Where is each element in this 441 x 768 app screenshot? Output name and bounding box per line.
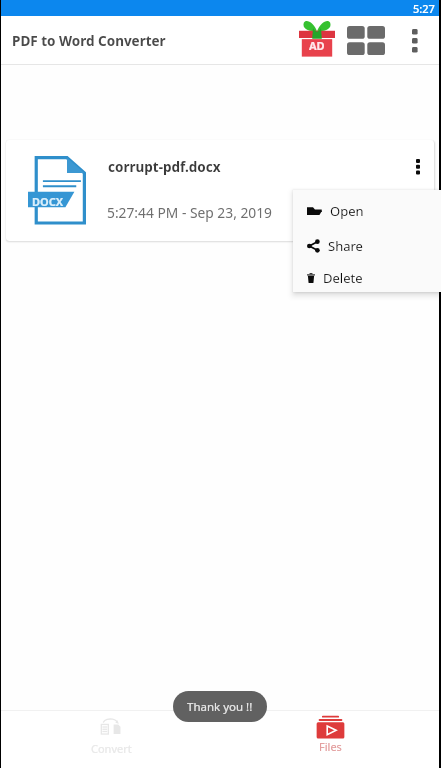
staticText: Convert [91, 741, 132, 756]
button[interactable]: Advertisement gift [294, 13, 340, 62]
button[interactable]: Delete [293, 263, 441, 292]
staticText: Share [328, 237, 363, 255]
button[interactable]: More options [396, 16, 433, 65]
button[interactable]: Grid view [343, 16, 389, 65]
staticText: 5:27:44 PM - Sep 23, 2019 [107, 203, 272, 222]
staticText: Files [319, 739, 342, 754]
button[interactable]: Files [279, 710, 381, 768]
staticText: corrupt-pdf.docx [108, 158, 221, 176]
staticText: PDF to Word Converter [12, 32, 166, 50]
staticText: DOCX [32, 194, 64, 209]
staticText: Open [330, 202, 364, 220]
button[interactable]: Open [293, 193, 441, 228]
staticText: Thank you !! [187, 699, 253, 715]
staticText: Delete [323, 269, 363, 287]
staticText: 5:27 [413, 1, 435, 16]
button[interactable]: Share [293, 228, 441, 263]
staticText: AD [309, 38, 325, 53]
button[interactable]: Convert [60, 710, 162, 768]
button[interactable]: File options [403, 140, 433, 241]
button[interactable]: DOCX [6, 140, 434, 241]
